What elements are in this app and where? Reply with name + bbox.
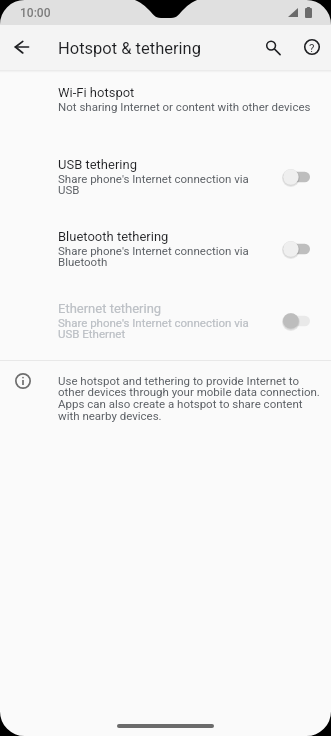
button[interactable]: USB tethering	[0, 142, 331, 214]
staticText: Share phone's Internet connection via Bl…	[58, 244, 249, 269]
staticText: Ethernet tethering	[58, 301, 162, 316]
button[interactable]: Bluetooth tethering	[0, 214, 331, 286]
button[interactable]: Toggle	[283, 306, 320, 336]
button[interactable]: Back	[2, 27, 42, 67]
staticText: ?	[309, 41, 315, 54]
button[interactable]: Help	[292, 27, 331, 67]
staticText: Share phone's Internet connection via US…	[58, 172, 249, 197]
button[interactable]: Home	[117, 724, 214, 728]
button[interactable]: Search	[255, 28, 295, 68]
staticText: USB tethering	[58, 157, 137, 172]
button[interactable]: Ethernet tethering	[0, 286, 331, 358]
button[interactable]: Use hotspot and tethering to provide Int…	[0, 361, 331, 436]
staticText: 10:00	[20, 6, 51, 20]
staticText: Hotspot & tethering	[58, 39, 201, 58]
staticText: Bluetooth tethering	[58, 229, 169, 244]
button[interactable]: Toggle	[283, 162, 320, 192]
staticText: Not sharing Internet or content with oth…	[58, 100, 311, 113]
staticText: Use hotspot and tethering to provide Int…	[58, 374, 320, 423]
button[interactable]: Toggle	[283, 234, 320, 264]
staticText: Wi-Fi hotspot	[58, 85, 135, 100]
staticText: Share phone's Internet connection via US…	[58, 316, 249, 341]
button[interactable]: Wi-Fi hotspot	[0, 70, 331, 142]
